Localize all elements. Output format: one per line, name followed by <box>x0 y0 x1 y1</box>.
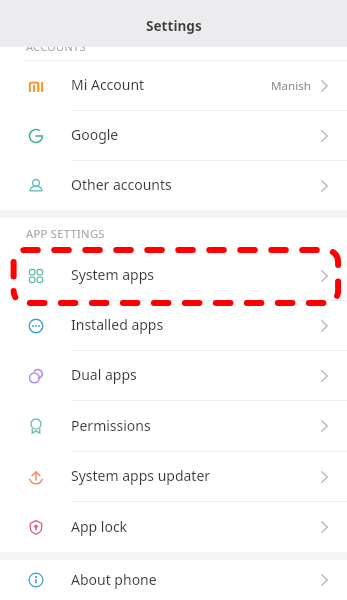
staticText: Settings <box>146 16 202 35</box>
staticText: App lock <box>71 517 128 536</box>
staticText: Manish <box>271 78 311 94</box>
button[interactable]: System apps updater <box>0 452 347 501</box>
button[interactable]: Mi Account <box>0 61 347 110</box>
button[interactable]: About phone <box>0 560 347 600</box>
staticText: Dual apps <box>71 365 137 384</box>
staticText: Other accounts <box>71 175 172 194</box>
button[interactable]: Google <box>0 111 347 160</box>
staticText: Permissions <box>71 416 151 435</box>
button[interactable]: Permissions <box>0 401 347 451</box>
staticText: Installed apps <box>71 315 164 334</box>
button[interactable]: Other accounts <box>0 161 347 210</box>
staticText: About phone <box>71 570 157 589</box>
staticText: ACCOUNTS <box>26 39 86 54</box>
staticText: System apps updater <box>71 466 211 485</box>
button[interactable]: Dual apps <box>0 351 347 400</box>
staticText: Google <box>71 125 119 144</box>
button[interactable]: System apps <box>0 251 347 300</box>
button[interactable]: App lock <box>0 502 347 552</box>
staticText: APP SETTINGS <box>26 226 105 241</box>
button[interactable]: Installed apps <box>0 301 347 350</box>
staticText: System apps <box>71 265 154 284</box>
staticText: Mi Account <box>71 75 145 94</box>
